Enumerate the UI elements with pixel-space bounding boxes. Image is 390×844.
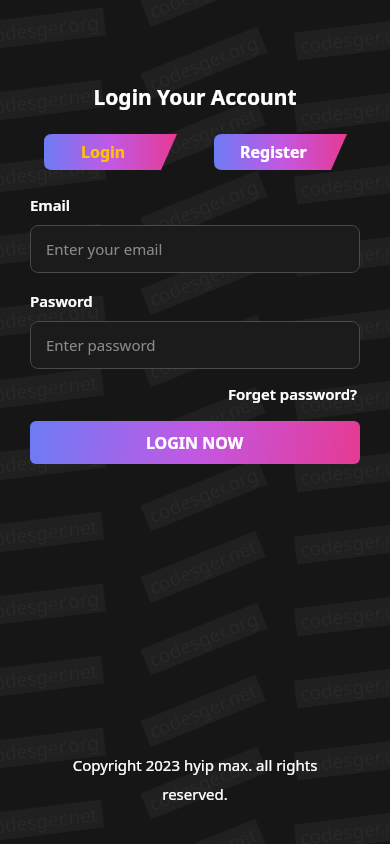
staticText: Email	[30, 195, 71, 215]
staticText: Enter password	[46, 335, 156, 355]
staticText: Login Your Account	[0, 83, 390, 112]
staticText: LOGIN NOW	[146, 432, 244, 454]
button[interactable]: Login tab	[44, 134, 177, 170]
staticText: Pasword	[30, 291, 93, 311]
staticText: Login	[81, 141, 126, 163]
button[interactable]: Register tab	[214, 134, 347, 170]
staticText: Copyright 2023 hyip max. all rights rese…	[48, 755, 342, 804]
button[interactable]: LOGIN NOW	[30, 421, 360, 464]
button[interactable]: Enter your email	[30, 225, 360, 273]
button[interactable]: Enter password	[30, 321, 360, 369]
staticText: Register	[240, 141, 307, 163]
button[interactable]: Forget password?	[226, 382, 360, 406]
staticText: Forget password?	[228, 384, 358, 404]
staticText: Enter your email	[46, 239, 163, 259]
